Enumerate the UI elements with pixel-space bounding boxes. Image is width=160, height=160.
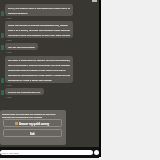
- button[interactable]: Answer my quick survey: [3, 119, 62, 127]
- staticText: 14:40: [6, 96, 12, 99]
- staticText: Answer my quick survey: [19, 122, 50, 125]
- button[interactable]: Thanks for chatting with us.: [5, 88, 44, 95]
- button[interactable]: Sorry, the system puts a self-based for …: [5, 4, 73, 16]
- staticText: 14:33: [6, 39, 12, 42]
- staticText: Sorry, the system puts a self-based for …: [8, 6, 70, 14]
- staticText: Are we still connected?: [8, 45, 35, 48]
- staticText: Since the system is already recognizing …: [8, 23, 70, 36]
- button[interactable]: Are we still connected?: [5, 43, 38, 50]
- staticText: channel by completing our survey.: [2, 115, 43, 118]
- button[interactable]: Since the system is already recognizing …: [5, 21, 73, 38]
- button[interactable]: Exit: [3, 129, 62, 137]
- staticText: Exit: [30, 132, 35, 135]
- button[interactable]: Send: [94, 150, 99, 155]
- staticText: Please help us improve the quality of th…: [2, 112, 56, 115]
- staticText: 14:35: [6, 51, 12, 54]
- button[interactable]: It's been a while with no activity on th…: [5, 56, 73, 83]
- button[interactable]: Type a message: [0, 150, 93, 155]
- staticText: It's been a while with no activity on th…: [8, 58, 70, 81]
- staticText: 14:40: [6, 84, 12, 87]
- staticText: 14:32: [6, 17, 12, 20]
- staticText: Type a message: [1, 151, 19, 154]
- staticText: Thanks for chatting with us.: [8, 90, 41, 93]
